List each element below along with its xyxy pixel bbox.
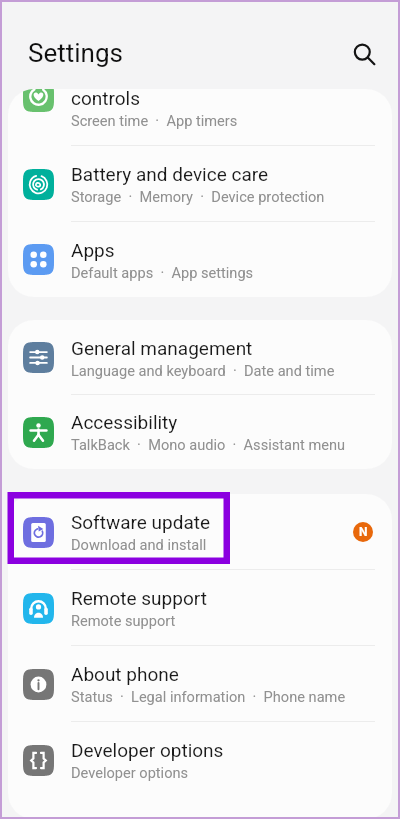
staticText: About phone: [71, 663, 179, 685]
staticText: TalkBack · Mono audio · Assistant menu: [71, 436, 346, 453]
staticText: Status · Legal information · Phone name: [71, 688, 346, 705]
staticText: Accessibility: [71, 411, 178, 433]
button[interactable]: Apps: [8, 222, 392, 297]
staticText: General management: [71, 337, 253, 359]
staticText: Storage · Memory · Device protection: [71, 188, 325, 205]
staticText: Language and keyboard · Date and time: [71, 362, 335, 379]
staticText: Apps: [71, 239, 115, 261]
button[interactable]: General management: [8, 320, 392, 395]
button[interactable]: About phone: [8, 646, 392, 722]
staticText: controls: [71, 89, 141, 109]
staticText: Remote support: [71, 587, 207, 609]
button[interactable]: controls: [8, 89, 392, 146]
button[interactable]: Remote support: [8, 570, 392, 646]
button[interactable]: Developer options: [8, 722, 392, 798]
staticText: N: [359, 525, 368, 539]
button[interactable]: Battery and device care: [8, 146, 392, 222]
button[interactable]: Software update: [8, 494, 392, 570]
staticText: Screen time · App timers: [71, 112, 238, 129]
staticText: Software update: [71, 511, 211, 533]
staticText: Download and install: [71, 536, 207, 553]
staticText: Developer options: [71, 764, 189, 781]
staticText: Settings: [28, 38, 123, 68]
staticText: Default apps · App settings: [71, 264, 254, 281]
button[interactable]: Search: [341, 31, 387, 77]
button[interactable]: Accessibility: [8, 395, 392, 469]
staticText: Developer options: [71, 739, 224, 761]
staticText: Battery and device care: [71, 163, 269, 185]
staticText: Remote support: [71, 612, 176, 629]
